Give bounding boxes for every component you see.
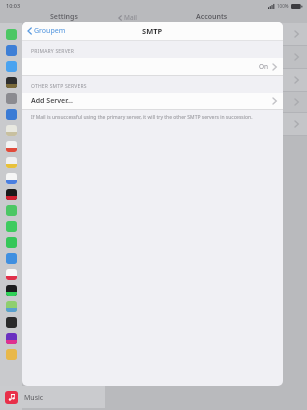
button[interactable]: App — [0, 106, 22, 122]
staticText: Add Server... — [31, 96, 73, 106]
button[interactable]: App — [0, 74, 22, 90]
button[interactable]: App — [0, 298, 22, 314]
button[interactable]: App — [0, 346, 22, 362]
button[interactable]: App — [0, 330, 22, 346]
button[interactable]: App — [0, 26, 22, 42]
button[interactable]: App — [0, 218, 22, 234]
button[interactable]: App — [0, 170, 22, 186]
button[interactable]: App — [0, 266, 22, 282]
button[interactable]: App — [0, 314, 22, 330]
button[interactable]: App — [0, 42, 22, 58]
staticText: OTHER SMTP SERVERS — [31, 83, 87, 90]
button[interactable]: Music — [0, 386, 105, 408]
button[interactable]: On — [22, 58, 283, 75]
button[interactable]: App — [0, 186, 22, 202]
button[interactable]: Add Server... — [22, 93, 283, 109]
button[interactable]: App — [0, 202, 22, 218]
button[interactable]: App — [0, 138, 22, 154]
staticText: On — [259, 62, 269, 71]
button[interactable]: App — [0, 282, 22, 298]
button[interactable]: App — [0, 58, 22, 74]
staticText: Accounts — [196, 12, 228, 22]
button[interactable]: App — [0, 234, 22, 250]
button[interactable]: App — [0, 122, 22, 138]
staticText: Music — [24, 393, 44, 403]
button[interactable]: App — [0, 90, 22, 106]
button[interactable]: App — [0, 154, 22, 170]
staticText: Mail — [124, 13, 137, 22]
button[interactable]: App — [0, 250, 22, 266]
staticText: SMTP — [142, 26, 163, 36]
staticText: 10:03 — [6, 2, 21, 9]
staticText: If Mail is unsuccessful using the primar… — [31, 114, 253, 121]
button[interactable]: Groupem — [27, 26, 66, 36]
staticText: Groupem — [34, 26, 66, 36]
staticText: Settings — [50, 12, 78, 22]
staticText: 100% — [277, 3, 289, 9]
staticText: PRIMARY SERVER — [31, 48, 75, 55]
